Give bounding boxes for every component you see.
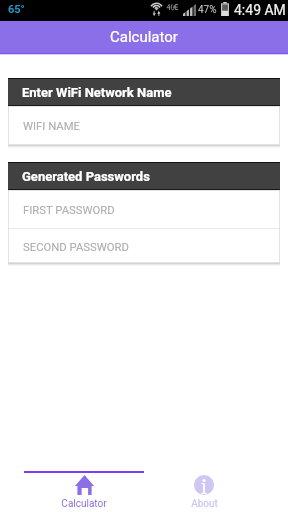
button[interactable]: FIRST PASSWORD (8, 190, 280, 228)
other: About tab (194, 475, 214, 495)
staticText: SECOND PASSWORD (23, 241, 129, 254)
button[interactable]: Calculator tab (24, 471, 144, 512)
staticText: Calculator (61, 498, 107, 510)
staticText: Enter WiFi Network Name (22, 85, 172, 100)
staticText: WIFI NAME (23, 120, 81, 133)
staticText: 65° (8, 3, 25, 16)
staticText: About (191, 498, 218, 510)
button[interactable]: WIFI NAME (8, 106, 280, 145)
staticText: Calculator (110, 28, 178, 46)
button[interactable]: SECOND PASSWORD (8, 229, 280, 263)
staticText: Generated Passwords (22, 169, 150, 184)
other: Calculator tab (75, 475, 94, 495)
staticText: 4:49 AM (234, 2, 286, 18)
button[interactable]: About tab (144, 471, 264, 512)
staticText: FIRST PASSWORD (23, 204, 115, 217)
staticText: 47% (198, 4, 217, 16)
